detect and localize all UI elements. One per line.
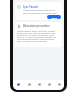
button[interactable]: Home — [13, 80, 24, 89]
staticText: incididunt ut labore et dolore mag — [17, 34, 54, 36]
staticText: adipiscing elit, sed do eiusmod tem — [17, 32, 56, 34]
button[interactable]: Allocation procedure — [15, 22, 62, 47]
staticText: Allocation procedure — [23, 24, 50, 28]
staticText: aliqua. Ut enim ad minim veniam qu — [17, 36, 57, 38]
staticText: Something is wrong with your — [23, 9, 56, 12]
button[interactable]: Sync Paused — [15, 2, 62, 20]
staticText: Open — [51, 16, 58, 19]
button[interactable]: Open — [47, 15, 61, 19]
button[interactable]: Shared — [34, 80, 44, 89]
staticText: nisi ut aliquip ex ea commo. — [17, 40, 48, 42]
button[interactable]: Starred — [44, 80, 54, 89]
staticText: Sync Paused — [23, 5, 38, 8]
staticText: nostrud exercitation ullamco labor — [17, 38, 55, 40]
staticText: Lorem ipsum dolor sit amet, consec — [17, 30, 56, 32]
button[interactable]: Account — [54, 80, 64, 89]
button[interactable]: Files — [24, 80, 34, 89]
staticText: file syncing now. Try again later. — [23, 12, 58, 15]
